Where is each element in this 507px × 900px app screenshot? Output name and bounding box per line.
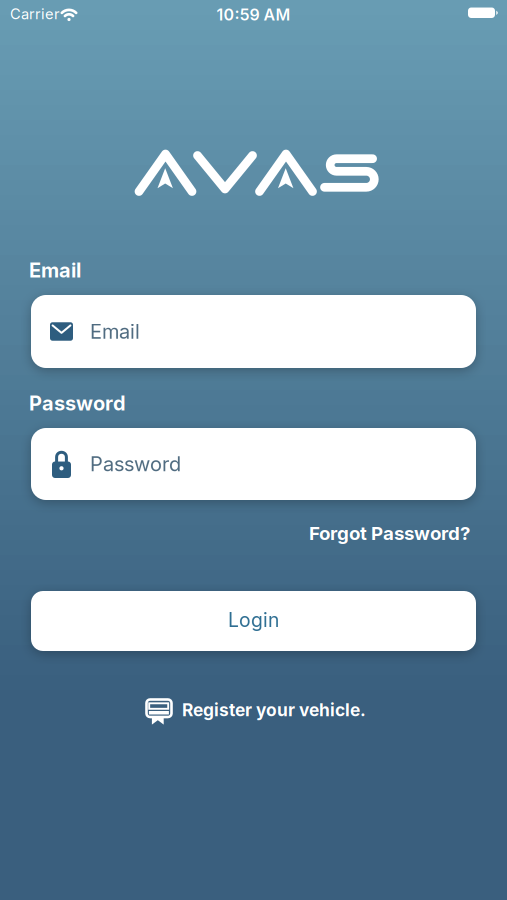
staticText: Login (228, 608, 279, 632)
staticText: Register your vehicle. (182, 699, 366, 720)
button[interactable]: Forgot Password? (309, 522, 470, 545)
button[interactable]: Register your vehicle. (2, 698, 507, 725)
staticText: Carrier (10, 5, 60, 23)
staticText: Forgot Password? (309, 522, 470, 545)
staticText: Password (90, 452, 181, 476)
button[interactable]: Login (31, 591, 476, 651)
staticText: Email (29, 258, 81, 282)
staticText: Email (90, 319, 140, 344)
button[interactable]: Email (31, 295, 476, 368)
staticText: 10:59 AM (216, 5, 290, 24)
staticText: Password (29, 391, 126, 415)
button[interactable]: Password (31, 428, 476, 500)
